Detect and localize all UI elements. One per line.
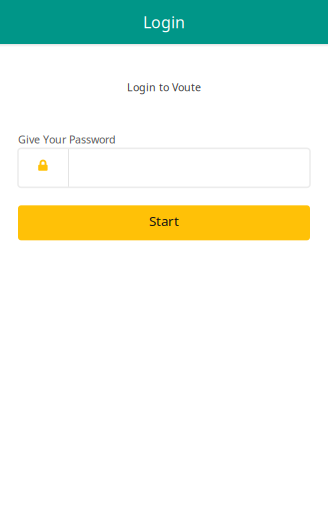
staticText: Give Your Password <box>18 132 116 146</box>
staticText: Login <box>143 11 185 33</box>
staticText: Login to Voute <box>127 80 201 94</box>
staticText: Start <box>149 212 179 230</box>
button[interactable]: Password <box>18 148 310 187</box>
button[interactable]: Start <box>18 205 310 240</box>
